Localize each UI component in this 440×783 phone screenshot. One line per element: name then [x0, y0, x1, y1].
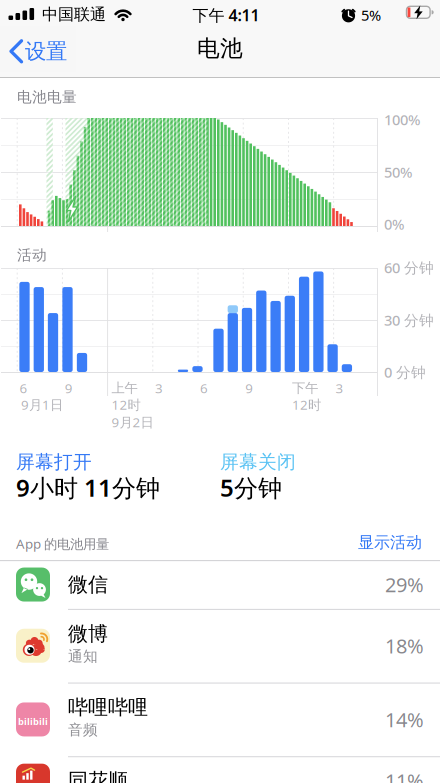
staticText: 设置: [25, 38, 67, 65]
staticText: 6: [200, 379, 208, 397]
staticText: 6: [19, 379, 27, 397]
staticText: 0%: [384, 214, 404, 234]
staticText: 50%: [384, 162, 412, 182]
button[interactable]: 微博: [0, 609, 440, 683]
staticText: 12时: [292, 396, 321, 413]
staticText: 下午: [292, 380, 318, 396]
button[interactable]: 显示活动: [334, 527, 424, 557]
staticText: 9月1日: [21, 396, 63, 413]
staticText: 上午: [111, 380, 137, 396]
staticText: 100%: [384, 110, 420, 129]
staticText: 9: [65, 379, 73, 397]
staticText: 9: [245, 379, 253, 397]
staticText: 0 分钟: [384, 362, 426, 382]
staticText: 18%: [385, 632, 424, 659]
staticText: 同花顺: [68, 768, 128, 783]
staticText: 3: [155, 379, 163, 397]
staticText: 屏幕打开: [16, 450, 92, 473]
staticText: 中国联通: [42, 5, 106, 24]
staticText: 12时: [111, 396, 140, 413]
staticText: App 的电池用量: [16, 535, 109, 552]
staticText: 29%: [385, 571, 424, 598]
staticText: 微信: [68, 572, 108, 597]
staticText: 通知: [68, 647, 98, 665]
staticText: bilibili: [18, 715, 48, 728]
staticText: 9小时 11分钟: [16, 472, 160, 503]
staticText: 哔哩哔哩: [68, 695, 148, 720]
staticText: 下午 4:11: [192, 4, 259, 26]
staticText: 5%: [361, 5, 381, 25]
button[interactable]: 同花顺: [0, 756, 440, 783]
button[interactable]: 微信: [0, 560, 440, 609]
staticText: 显示活动: [358, 533, 422, 552]
staticText: 5分钟: [220, 472, 282, 503]
staticText: 活动: [17, 246, 47, 264]
staticText: 微博: [68, 621, 108, 646]
staticText: 电池电量: [17, 88, 77, 106]
button[interactable]: 返回设置: [0, 26, 76, 72]
staticText: 30 分钟: [384, 310, 434, 330]
staticText: 3: [336, 379, 344, 397]
staticText: 屏幕关闭: [220, 450, 296, 473]
button[interactable]: bilibili: [0, 683, 440, 756]
staticText: 9月2日: [111, 413, 153, 431]
staticText: 音频: [68, 721, 98, 739]
staticText: 60 分钟: [384, 258, 434, 277]
staticText: 电池: [197, 35, 243, 62]
staticText: 11%: [385, 767, 424, 783]
staticText: 14%: [385, 706, 424, 733]
